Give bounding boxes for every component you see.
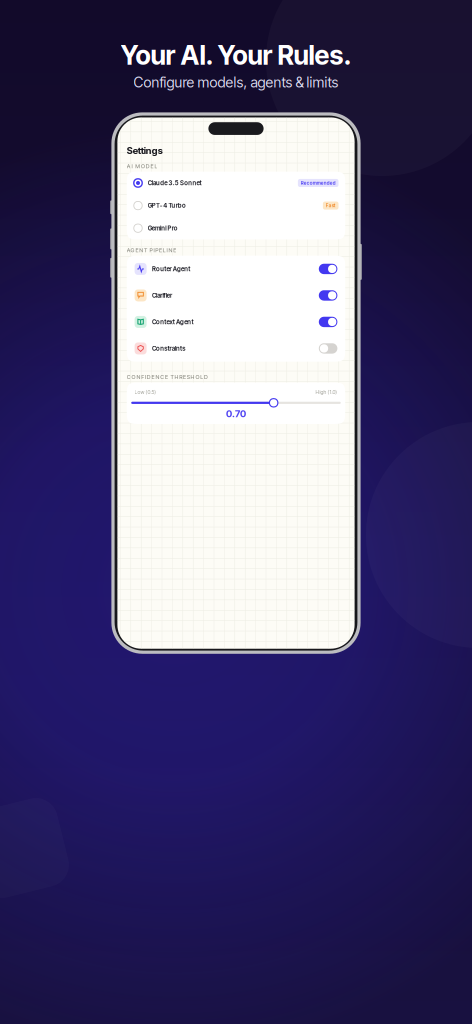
staticText: AI MODEL: [127, 163, 157, 169]
button[interactable]: Gemini Pro: [127, 217, 345, 239]
staticText: Router Agent: [152, 265, 190, 273]
staticText: Settings: [127, 145, 163, 156]
staticText: Configure models, agents & limits: [133, 74, 338, 91]
staticText: Fast: [326, 203, 336, 208]
button[interactable]: Constraints: [127, 335, 345, 362]
staticText: GPT-4 Turbo: [148, 202, 186, 209]
staticText: Context Agent: [152, 318, 193, 326]
staticText: High (1.0): [315, 389, 337, 395]
button[interactable]: Router Agent: [127, 256, 345, 282]
staticText: Clarifier: [152, 292, 172, 299]
staticText: Your AI. Your Rules.: [120, 39, 351, 71]
staticText: CONFIDENCE THRESHOLD: [127, 374, 208, 380]
button[interactable]: Clarifier: [127, 282, 345, 309]
staticText: Constraints: [152, 345, 185, 352]
button[interactable]: Context Agent: [127, 309, 345, 335]
button[interactable]: Claude 3.5 Sonnet: [127, 172, 345, 194]
staticText: Gemini Pro: [148, 224, 178, 232]
staticText: Low (0.5): [135, 389, 157, 395]
staticText: Recommended: [301, 180, 336, 186]
button[interactable]: GPT-4 Turbo: [127, 194, 345, 217]
staticText: AGENT PIPELINE: [127, 247, 176, 253]
staticText: 0.70: [226, 408, 246, 419]
staticText: Claude 3.5 Sonnet: [148, 179, 202, 187]
